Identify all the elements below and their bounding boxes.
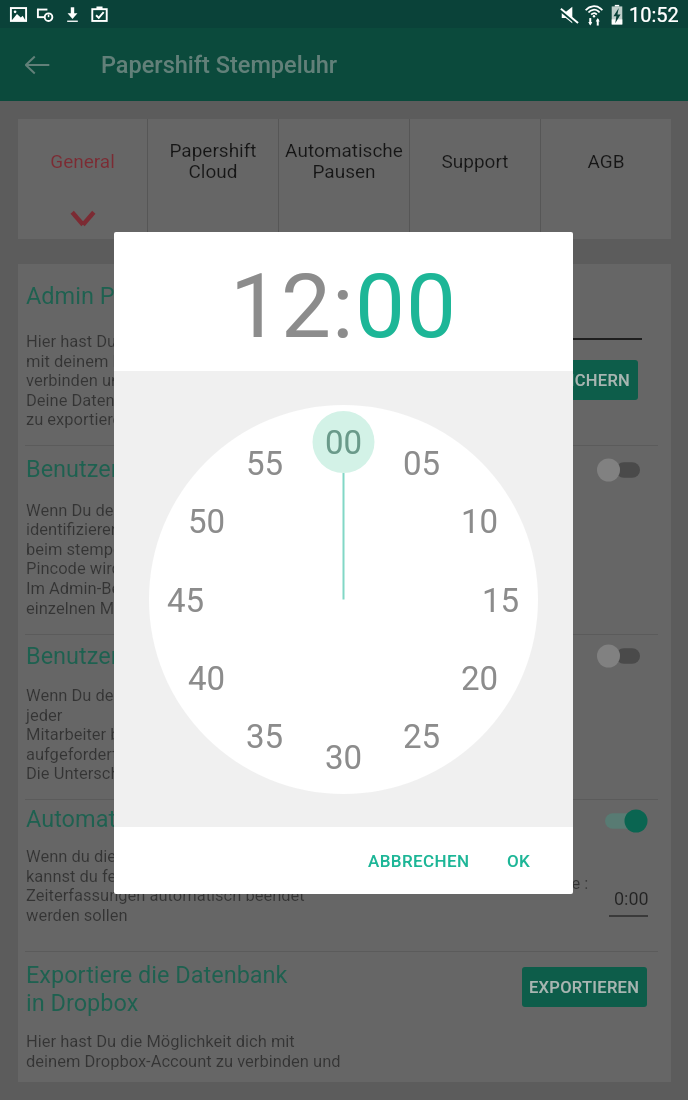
staticText: deinem Dropbox-Account zu verbinden und	[26, 1052, 341, 1071]
staticText: verbinden und damit die Option	[26, 371, 255, 390]
button[interactable]: Back	[0, 28, 73, 101]
staticText: Wenn Du den Benutzer eindeutig	[26, 501, 264, 520]
staticText: 10	[461, 502, 499, 541]
staticText: Deine Daten in die Cloud	[26, 391, 205, 410]
staticText: Wenn Du den Benutzer eindeutig	[26, 686, 264, 705]
staticText: 12:	[230, 254, 355, 358]
staticText: 00	[325, 423, 363, 462]
button[interactable]: Support	[410, 119, 540, 239]
other: Muted	[560, 4, 582, 26]
button[interactable]: Papershift Cloud	[148, 119, 278, 239]
staticText: zu exportieren	[26, 410, 131, 429]
button[interactable]: ABBRECHEN	[356, 841, 482, 881]
staticText: mit deinem Papershift-Account zu	[26, 352, 276, 371]
staticText: 35	[246, 717, 284, 756]
staticText: SPEICHERN	[539, 371, 631, 390]
staticText: jeder	[26, 706, 63, 725]
staticText: Benutzer Unterschrift	[26, 642, 248, 670]
button[interactable]: SPEICHERN	[531, 360, 638, 400]
staticText: kannst du festlegen wann die	[26, 867, 241, 886]
staticText: 40	[188, 659, 226, 698]
staticText: Benutzer Pincode	[26, 455, 210, 483]
staticText: 10:52	[629, 3, 679, 26]
staticText: EXPORTIEREN	[529, 978, 640, 997]
staticText: Automatisches Beenden	[26, 805, 281, 833]
staticText: General	[50, 150, 115, 172]
staticText: 0:00	[614, 888, 649, 909]
staticText: Hier hast Du die Möglichkeit dich mit	[26, 1032, 295, 1051]
staticText: Automatische Pausen	[285, 139, 403, 183]
staticText: Papershift Cloud	[169, 139, 257, 183]
button[interactable]: Toggle	[590, 453, 648, 487]
staticText: Pincode wird dann benötigt.	[26, 559, 231, 578]
staticText: Exportiere die Datenbank	[26, 961, 288, 989]
staticText: 20	[461, 659, 499, 698]
button[interactable]: AGB	[541, 119, 671, 239]
button[interactable]: General	[18, 119, 147, 239]
staticText: 30	[325, 738, 363, 777]
staticText: OK	[507, 851, 531, 871]
staticText: 15	[482, 581, 520, 620]
staticText: beim stempeln einen Pincode	[26, 540, 243, 559]
staticText: 55	[246, 444, 284, 483]
staticText: Zeiterfassungen automatisch beendet	[26, 886, 305, 905]
staticText: einzelnen Mitarbeiter verwalten	[26, 599, 256, 618]
staticText: Support	[441, 150, 509, 172]
staticText: Im Admin-Bereich kannst Du die	[26, 579, 260, 598]
staticText: AGB	[587, 150, 625, 172]
staticText: Mitarbeiter beim stempeln	[26, 725, 220, 744]
button[interactable]: Toggle	[590, 639, 648, 673]
staticText: Admin Passwort setzen	[26, 282, 274, 310]
staticText: 05	[403, 444, 441, 483]
staticText: Die Unterschrift wird gespeichert	[26, 764, 266, 783]
button[interactable]: OK	[495, 841, 543, 881]
staticText: Wenn du diese Option aktivierst	[26, 847, 258, 866]
staticText: Papershift Stempeluhr	[101, 51, 338, 79]
staticText: Uhrzeit Ende :	[488, 874, 589, 893]
staticText: 25	[403, 717, 441, 756]
staticText: werden sollen	[26, 906, 128, 925]
staticText: 45	[167, 581, 205, 620]
button[interactable]: Toggle	[590, 804, 648, 838]
staticText: 50	[188, 502, 226, 541]
staticText: in Dropbox	[26, 989, 139, 1017]
staticText: 00	[355, 254, 458, 358]
button[interactable]: Automatische Pausen	[279, 119, 409, 239]
staticText: Hier hast Du die Möglichkeit dich	[26, 332, 267, 351]
staticText: aufgefordert zu unterschreiben.	[26, 745, 257, 764]
button[interactable]: EXPORTIEREN	[522, 967, 647, 1007]
staticText: identifizieren möchtest, kannst Du	[26, 520, 275, 539]
staticText: ABBRECHEN	[368, 851, 470, 871]
